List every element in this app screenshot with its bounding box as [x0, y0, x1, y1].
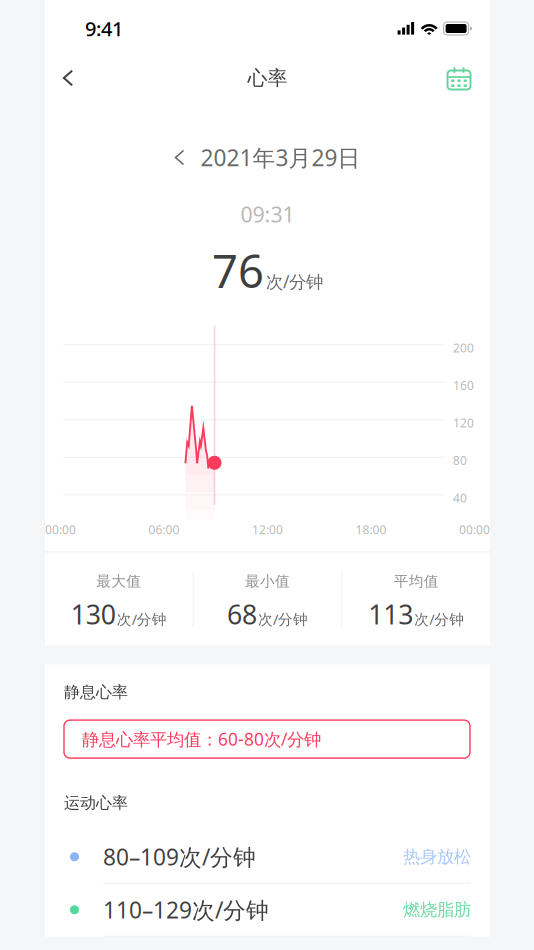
staticText: 80 [453, 452, 467, 468]
staticText: 68 [227, 596, 257, 632]
button[interactable]: 110–129次/分钟 [45, 884, 490, 937]
staticText: 00:00 [45, 521, 76, 537]
staticText: 次/分钟 [117, 609, 167, 629]
button[interactable]: 2021年3月29日 [174, 120, 360, 195]
staticText: 平均值 [394, 572, 439, 590]
staticText: 12:00 [252, 521, 283, 537]
button[interactable]: 80–109次/分钟 [45, 831, 490, 884]
staticText: 燃烧脂肪 [403, 899, 471, 920]
staticText: 00:00 [459, 521, 490, 537]
staticText: 09:31 [240, 200, 294, 228]
staticText: 18:00 [355, 521, 386, 537]
staticText: 静息心率 [64, 682, 128, 702]
staticText: 热身放松 [403, 846, 471, 867]
staticText: 110–129次/分钟 [103, 895, 269, 925]
staticText: 次/分钟 [266, 270, 323, 293]
staticText: 76 [212, 240, 264, 300]
staticText: 次/分钟 [414, 609, 464, 629]
staticText: 最大值 [96, 572, 141, 590]
staticText: 2021年3月29日 [200, 142, 360, 172]
staticText: 200 [453, 340, 474, 356]
staticText: 静息心率平均值：60-80次/分钟 [82, 728, 321, 751]
button[interactable]: 日历 [439, 56, 479, 100]
staticText: 9:41 [85, 15, 123, 42]
staticText: 120 [453, 415, 474, 431]
staticText: 最小值 [245, 572, 290, 590]
staticText: 运动心率 [64, 793, 128, 813]
staticText: 113 [368, 596, 413, 632]
staticText: 06:00 [148, 521, 179, 537]
staticText: 心率 [247, 66, 287, 90]
staticText: 次/分钟 [258, 609, 308, 629]
staticText: 130 [71, 596, 116, 632]
staticText: 40 [453, 490, 467, 506]
button[interactable]: 返回 [48, 56, 88, 100]
staticText: 160 [453, 377, 474, 393]
staticText: 80–109次/分钟 [103, 842, 256, 872]
